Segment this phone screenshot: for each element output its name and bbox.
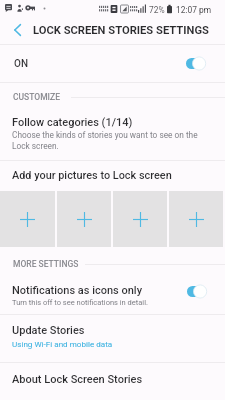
staticText: Turn this off to see notifications in de… xyxy=(12,298,148,307)
button[interactable]: Add picture xyxy=(0,191,55,247)
button[interactable]: Add picture xyxy=(169,191,223,247)
staticText: CUSTOMIZE xyxy=(13,92,60,102)
staticText: Using Wi-Fi and mobile data xyxy=(12,339,113,348)
button[interactable]: About Lock Screen Stories xyxy=(0,363,225,400)
button[interactable]: Navigate up xyxy=(5,17,30,42)
staticText: Follow categories (1/14) xyxy=(12,116,133,129)
staticText: Notifications as icons only xyxy=(12,284,143,297)
button[interactable]: Toggle on xyxy=(186,57,207,70)
button[interactable]: Add picture xyxy=(57,191,111,247)
button[interactable]: Update Stories xyxy=(0,315,225,362)
staticText: LOCK SCREEN STORIES SETTINGS xyxy=(33,24,209,37)
staticText: 72% xyxy=(149,5,165,15)
button[interactable]: Add picture xyxy=(113,191,167,247)
staticText: Add your pictures to Lock screen xyxy=(12,169,172,182)
button[interactable]: Follow categories (1/14) xyxy=(0,104,225,160)
button[interactable]: Add your pictures to Lock screen xyxy=(0,161,225,191)
button[interactable]: ON xyxy=(0,45,225,82)
staticText: ON xyxy=(14,58,28,70)
staticText: About Lock Screen Stories xyxy=(12,373,143,386)
staticText: Update Stories xyxy=(12,324,85,337)
staticText: Choose the kinds of stories you want to … xyxy=(12,130,208,151)
staticText: 12:07 pm xyxy=(176,5,212,15)
button[interactable]: Notifications as icons only xyxy=(0,272,225,314)
staticText: MORE SETTINGS xyxy=(13,259,79,269)
button[interactable]: Toggle on xyxy=(187,285,208,298)
